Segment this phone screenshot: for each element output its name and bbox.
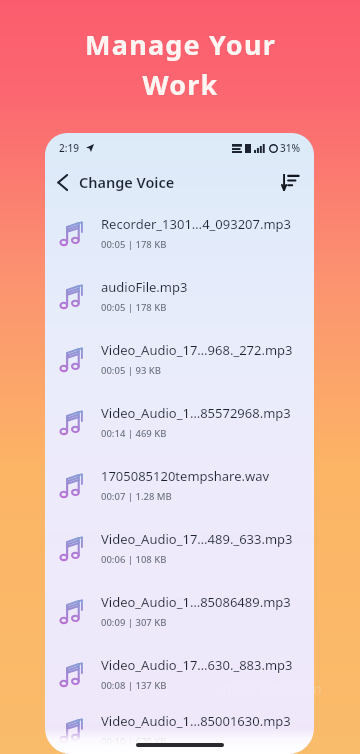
staticText: 31%	[280, 141, 300, 155]
staticText: malavida.com	[222, 678, 323, 698]
other: Back	[57, 174, 68, 191]
staticText: Recorder_1301…4_093207.mp3	[101, 215, 292, 233]
button[interactable]: Video_Audio_17…630._883.mp3	[45, 642, 314, 705]
staticText: Video_Audio_1…85001630.mp3	[101, 712, 291, 730]
staticText: 00:14 | 469 KB	[101, 427, 167, 440]
staticText: Manage Your	[85, 26, 276, 63]
staticText: Video_Audio_17…968._272.mp3	[101, 341, 293, 359]
staticText: Video_Audio_1…85086489.mp3	[101, 593, 291, 611]
staticText: Video_Audio_1…85572968.mp3	[101, 404, 291, 422]
staticText: 00:05 | 93 KB	[101, 364, 162, 377]
button[interactable]: 1705085120tempshare.wav	[45, 453, 314, 516]
staticText: 00:09 | 307 KB	[101, 616, 167, 629]
button[interactable]: audioFile.mp3	[45, 264, 314, 327]
button[interactable]: Back	[45, 168, 183, 196]
button[interactable]: Video_Audio_1…85572968.mp3	[45, 390, 314, 453]
button[interactable]: Sort	[276, 168, 304, 196]
staticText: audioFile.mp3	[101, 278, 188, 296]
button[interactable]: Video_Audio_1…85001630.mp3	[45, 705, 314, 754]
staticText: 00:07 | 1.28 MB	[101, 490, 172, 503]
staticText: 00:05 | 178 KB	[101, 238, 167, 251]
staticText: Video_Audio_17…630._883.mp3	[101, 656, 293, 674]
staticText: Video_Audio_17…489._633.mp3	[101, 530, 293, 548]
staticText: 00:10 | 670 KB	[101, 735, 167, 748]
staticText: 00:06 | 108 KB	[101, 553, 167, 566]
staticText: 00:08 | 137 KB	[101, 679, 167, 692]
button[interactable]: Video_Audio_17…968._272.mp3	[45, 327, 314, 390]
button[interactable]: Video_Audio_17…489._633.mp3	[45, 516, 314, 579]
button[interactable]: Recorder_1301…4_093207.mp3	[45, 201, 314, 264]
staticText: Change Voice	[79, 172, 175, 192]
button[interactable]: Video_Audio_1…85086489.mp3	[45, 579, 314, 642]
staticText: 00:05 | 178 KB	[101, 301, 167, 314]
staticText: 1705085120tempshare.wav	[101, 467, 270, 485]
staticText: Work	[142, 66, 219, 103]
staticText: 2:19	[59, 141, 79, 155]
